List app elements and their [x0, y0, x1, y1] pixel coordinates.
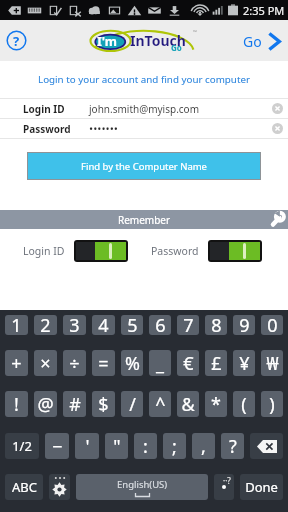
staticText: /: [129, 392, 136, 417]
staticText: Password: [23, 122, 89, 136]
staticText: Remember: [118, 213, 171, 227]
button[interactable]: Clear: [272, 103, 283, 114]
staticText: 6: [155, 315, 166, 333]
staticText: 2: [40, 315, 51, 333]
staticText: !: [14, 392, 19, 417]
button[interactable]: Done: [240, 474, 283, 500]
button[interactable]: ': [75, 433, 99, 459]
button[interactable]: Find by the Computer Name: [28, 153, 260, 179]
staticText: Go: [171, 42, 182, 53]
button[interactable]: ): [261, 391, 283, 417]
staticText: I'm: [97, 33, 118, 50]
staticText: Go: [243, 32, 262, 51]
button[interactable]: 0: [261, 315, 283, 335]
button[interactable]: $: [92, 391, 115, 417]
staticText: −: [52, 434, 63, 459]
button[interactable]: period: [214, 474, 234, 500]
button[interactable]: Toggle: [76, 242, 126, 260]
button[interactable]: %: [121, 350, 143, 376]
button[interactable]: ?: [221, 433, 244, 459]
staticText: Login to your account and find your comp…: [38, 73, 251, 86]
button[interactable]: @: [34, 391, 57, 417]
button[interactable]: 9: [233, 315, 255, 335]
staticText: =: [98, 351, 109, 376]
button[interactable]: £: [205, 350, 227, 376]
button[interactable]: Toggle: [210, 242, 260, 260]
staticText: *: [211, 392, 221, 417]
staticText: ÷: [69, 351, 80, 376]
button[interactable]: 7: [177, 315, 199, 335]
staticText: $: [98, 392, 109, 417]
staticText: ,: [201, 434, 206, 459]
button[interactable]: :: [134, 433, 157, 459]
button[interactable]: ÷: [63, 350, 86, 376]
staticText: 2:35 PM: [243, 3, 285, 18]
staticText: #: [69, 392, 81, 417]
button[interactable]: 8: [205, 315, 227, 335]
staticText: ×: [40, 351, 51, 376]
staticText: %: [125, 351, 140, 376]
button[interactable]: /: [121, 391, 143, 417]
staticText: €: [183, 351, 194, 376]
button[interactable]: €: [177, 350, 199, 376]
button[interactable]: ": [105, 433, 128, 459]
staticText: 0: [267, 315, 278, 333]
staticText: Find by the Computer Name: [81, 160, 207, 173]
button[interactable]: ABC: [5, 474, 43, 500]
button[interactable]: ¥: [233, 350, 255, 376]
staticText: ··?: [223, 475, 231, 486]
button[interactable]: back: [250, 433, 283, 459]
button[interactable]: Login ID: [0, 99, 288, 118]
staticText: ^: [155, 392, 166, 417]
button[interactable]: 5: [121, 315, 143, 335]
button[interactable]: 4: [92, 315, 115, 335]
button[interactable]: Clear: [272, 123, 283, 134]
staticText: Done: [245, 478, 278, 496]
staticText: £: [211, 351, 222, 376]
button[interactable]: ^: [149, 391, 171, 417]
button[interactable]: gear: [49, 474, 70, 500]
staticText: ": [113, 434, 121, 459]
button[interactable]: (: [233, 391, 255, 417]
staticText: 3: [69, 315, 80, 333]
button[interactable]: +: [5, 350, 28, 376]
button[interactable]: Help: [6, 30, 27, 51]
staticText: 1: [11, 315, 22, 333]
button[interactable]: 6: [149, 315, 171, 335]
button[interactable]: _: [149, 350, 171, 376]
button[interactable]: ×: [34, 350, 57, 376]
button[interactable]: 2: [34, 315, 57, 335]
button[interactable]: 1: [5, 315, 28, 335]
staticText: +: [11, 351, 22, 376]
button[interactable]: =: [92, 350, 115, 376]
staticText: ™: [193, 29, 197, 36]
staticText: ): [269, 392, 275, 417]
button[interactable]: ,: [192, 433, 215, 459]
staticText: ': [85, 434, 90, 459]
button[interactable]: #: [63, 391, 86, 417]
staticText: 7: [183, 315, 194, 333]
button[interactable]: 1/2: [5, 433, 39, 459]
staticText: ₩: [266, 351, 279, 376]
button[interactable]: 3: [63, 315, 86, 335]
button[interactable]: ;: [163, 433, 186, 459]
button[interactable]: !: [5, 391, 28, 417]
button[interactable]: ₩: [261, 350, 283, 376]
staticText: ?: [13, 32, 20, 50]
staticText: ¥: [239, 351, 250, 376]
staticText: Login ID: [23, 102, 89, 116]
staticText: 8: [211, 315, 222, 333]
button[interactable]: −: [45, 433, 69, 459]
staticText: 9: [239, 315, 250, 333]
button[interactable]: Settings: [270, 212, 285, 227]
button[interactable]: &: [177, 391, 199, 417]
staticText: (: [241, 392, 247, 417]
button[interactable]: Password: [0, 119, 288, 138]
button[interactable]: Go: [243, 32, 282, 51]
staticText: Login ID: [23, 244, 65, 258]
staticText: 1/2: [12, 437, 32, 455]
button[interactable]: space: [76, 474, 208, 500]
button[interactable]: *: [205, 391, 227, 417]
staticText: @: [37, 392, 54, 417]
staticText: InTouch: [130, 31, 186, 50]
